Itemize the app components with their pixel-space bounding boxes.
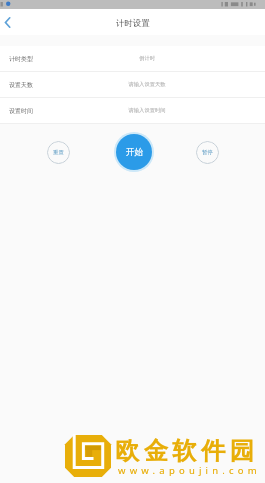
staticText: 计时类型 xyxy=(9,55,33,63)
button[interactable]: 重置 xyxy=(47,141,70,164)
staticText: 设置时间 xyxy=(9,107,33,115)
staticText: 请输入设置时间 xyxy=(128,107,166,114)
staticText: 倒计时 xyxy=(139,55,155,62)
button[interactable]: 设置天数 xyxy=(0,72,265,97)
staticText: 重置 xyxy=(53,149,64,156)
staticText: www.apoujin.com xyxy=(118,464,261,477)
button[interactable]: 设置时间 xyxy=(0,98,265,123)
button[interactable]: 开始 xyxy=(116,134,152,170)
staticText: 暂停 xyxy=(202,149,213,156)
staticText: 开始 xyxy=(126,147,143,158)
staticText: 设置天数 xyxy=(9,81,33,89)
staticText: 计时设置 xyxy=(116,18,150,29)
staticText: 欧金软件园 xyxy=(113,436,256,466)
staticText: 请输入设置天数 xyxy=(128,81,166,88)
button[interactable]: 计时类型 xyxy=(0,46,265,71)
button[interactable]: 暂停 xyxy=(196,141,219,164)
button[interactable]: Back xyxy=(0,9,15,35)
